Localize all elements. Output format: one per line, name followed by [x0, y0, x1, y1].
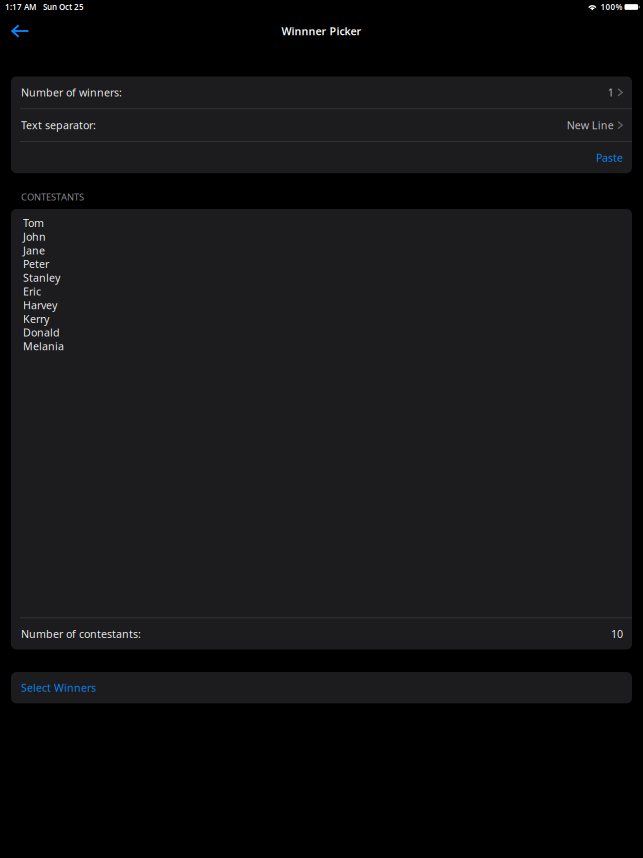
staticText: Harvey [23, 298, 57, 312]
button[interactable]: Back [0, 15, 40, 47]
button[interactable]: Text separator: [11, 109, 632, 141]
button[interactable]: Contestants list [11, 209, 632, 617]
staticText: Select Winners [21, 681, 96, 695]
staticText: Eric [23, 284, 41, 298]
button[interactable]: Paste [11, 142, 632, 173]
staticText: Number of winners: [21, 85, 122, 99]
staticText: 10 [611, 627, 623, 641]
button[interactable]: Select Winners [11, 672, 632, 703]
staticText: Melania [23, 339, 64, 353]
staticText: Stanley [23, 271, 60, 285]
staticText: Peter [23, 257, 49, 271]
staticText: Text separator: [21, 118, 96, 132]
staticText: Winnner Picker [281, 24, 361, 38]
staticText: Sun Oct 25 [43, 2, 84, 12]
staticText: New Line [567, 118, 614, 132]
staticText: Jane [23, 243, 45, 257]
staticText: Number of contestants: [21, 627, 141, 641]
staticText: CONTESTANTS [21, 191, 84, 203]
staticText: Tom [23, 216, 44, 230]
staticText: Donald [23, 325, 60, 340]
staticText: 1 [608, 85, 614, 99]
button[interactable]: Number of winners: [11, 76, 632, 108]
staticText: Paste [596, 150, 623, 165]
staticText: 100% [600, 2, 622, 12]
staticText: Kerry [23, 312, 49, 326]
staticText: 1:17 AM [5, 2, 36, 12]
staticText: John [23, 229, 46, 244]
